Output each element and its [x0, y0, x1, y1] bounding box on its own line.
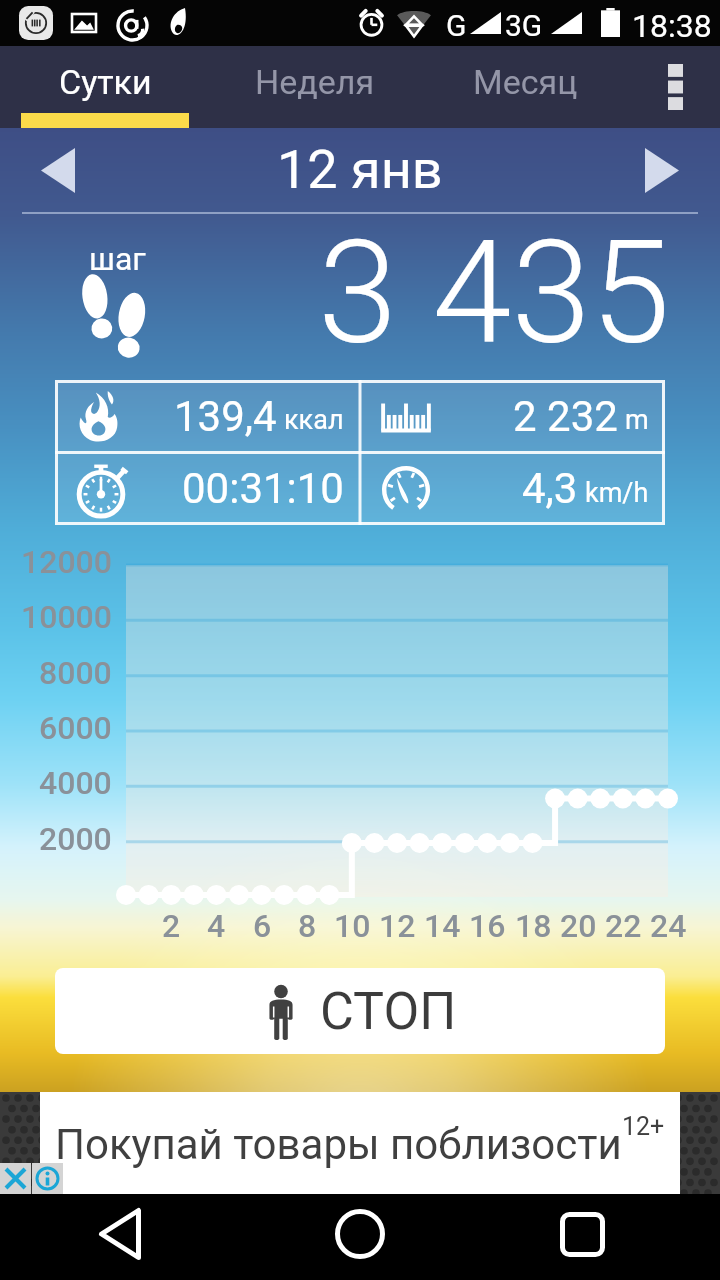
staticText: 18:38 — [632, 7, 712, 45]
staticText: 12 — [379, 907, 416, 945]
staticText: 8 — [298, 907, 317, 945]
staticText: m — [625, 404, 649, 436]
button[interactable]: Сутки — [0, 46, 210, 128]
staticText: 4,3 — [522, 464, 578, 513]
button[interactable]: Recent apps — [542, 1194, 622, 1274]
staticText: 3 435 — [318, 209, 671, 377]
staticText: 6000 — [39, 709, 112, 747]
staticText: 10 — [334, 907, 371, 945]
staticText: 2 232 — [513, 392, 618, 441]
button[interactable]: Close ad — [0, 1163, 31, 1194]
staticText: ккал — [284, 404, 344, 436]
button[interactable]: Next day — [632, 140, 692, 200]
staticText: 4 — [207, 907, 226, 945]
button[interactable]: Покупай товары поблизости — [40, 1092, 680, 1194]
staticText: 00:31:10 — [182, 464, 344, 513]
staticText: СТОП — [320, 981, 457, 1042]
button[interactable]: More options — [630, 46, 720, 128]
staticText: Месяц — [473, 62, 578, 102]
staticText: 24 — [650, 907, 687, 945]
staticText: 16 — [469, 907, 506, 945]
button[interactable]: Home — [320, 1194, 400, 1274]
staticText: 12000 — [21, 543, 112, 581]
staticText: 4000 — [39, 764, 112, 802]
staticText: 12+ — [622, 1112, 665, 1141]
button[interactable]: Back — [80, 1194, 160, 1274]
staticText: Сутки — [59, 62, 152, 102]
staticText: Покупай товары поблизости — [55, 1120, 622, 1169]
button[interactable]: Ad information — [32, 1163, 63, 1194]
staticText: 14 — [424, 907, 461, 945]
button[interactable]: Месяц — [420, 46, 630, 128]
staticText: 139,4 — [174, 392, 277, 441]
staticText: 22 — [605, 907, 642, 945]
staticText: 20 — [560, 907, 597, 945]
staticText: 2 — [162, 907, 181, 945]
staticText: 2000 — [39, 820, 112, 858]
button[interactable]: 00:31:10 — [55, 452, 360, 525]
staticText: km/h — [585, 477, 649, 509]
staticText: G — [446, 8, 467, 43]
staticText: 10000 — [21, 598, 112, 636]
button[interactable]: 2 232 — [360, 380, 665, 452]
button[interactable]: Неделя — [210, 46, 420, 128]
button[interactable]: 4,3 — [360, 452, 665, 525]
staticText: 18 — [515, 907, 552, 945]
staticText: шаг — [89, 240, 146, 278]
staticText: 12 янв — [277, 138, 443, 201]
staticText: 8000 — [39, 654, 112, 692]
button[interactable]: СТОП — [55, 968, 665, 1054]
button[interactable]: Previous day — [28, 140, 88, 200]
staticText: Неделя — [255, 62, 375, 102]
staticText: 6 — [253, 907, 272, 945]
staticText: 3G — [505, 8, 543, 43]
button[interactable]: 139,4 — [55, 380, 360, 452]
